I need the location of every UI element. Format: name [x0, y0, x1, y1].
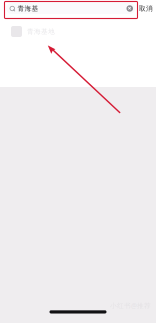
- staticText: 青海基地: [27, 27, 55, 36]
- button[interactable]: Clear text: [126, 5, 133, 12]
- button[interactable]: 取消: [139, 4, 153, 13]
- button[interactable]: 青海基地: [0, 26, 156, 37]
- staticText: 取消: [139, 4, 153, 13]
- staticText: 青海基: [17, 4, 38, 13]
